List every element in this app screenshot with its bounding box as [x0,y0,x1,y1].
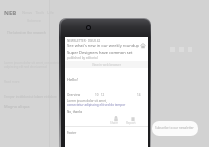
staticText: Share [110,121,119,125]
staticText: 14 [137,93,141,97]
staticText: NEB [4,9,17,17]
staticText: View in web browser [92,63,121,67]
staticText: Lorem ipsum dolor sit amet, [67,99,107,103]
staticText: News Tech Life [22,10,54,15]
staticText: The latest on the research [7,31,46,35]
staticText: No, thanks [67,110,83,114]
staticText: Magna aliqua [4,104,30,109]
staticText: consectetur adipiscing elit sed do tempo… [67,103,126,107]
staticText: Read more [4,80,20,84]
staticText: Hello! [67,77,78,82]
staticText: NEWSLETTER · ISSUE 42 [67,39,101,43]
staticText: adipiscing elit sed do eiusmod [4,65,47,69]
staticText: Lorem ipsum dolor sit amet, consectetur [4,61,62,65]
staticText: Subscribe to our newsletter today [155,126,198,130]
staticText: Tempor incididunt ut labore et dolore [4,95,57,99]
staticText: Footer [67,131,77,135]
staticText: Super Designers have common set [67,50,133,55]
button[interactable]: Home [139,42,147,50]
staticText: Overview [67,93,81,97]
button[interactable]: Like [112,115,120,123]
staticText: See what's new in our weekly roundup [67,43,140,48]
button[interactable]: Subscribe to our newsletter today [152,121,198,136]
button[interactable]: Comment [129,115,137,123]
staticText: 10 12 [95,93,105,97]
staticText: Report [126,121,136,125]
staticText: published by editorial [67,56,98,60]
staticText: Science [27,18,42,23]
